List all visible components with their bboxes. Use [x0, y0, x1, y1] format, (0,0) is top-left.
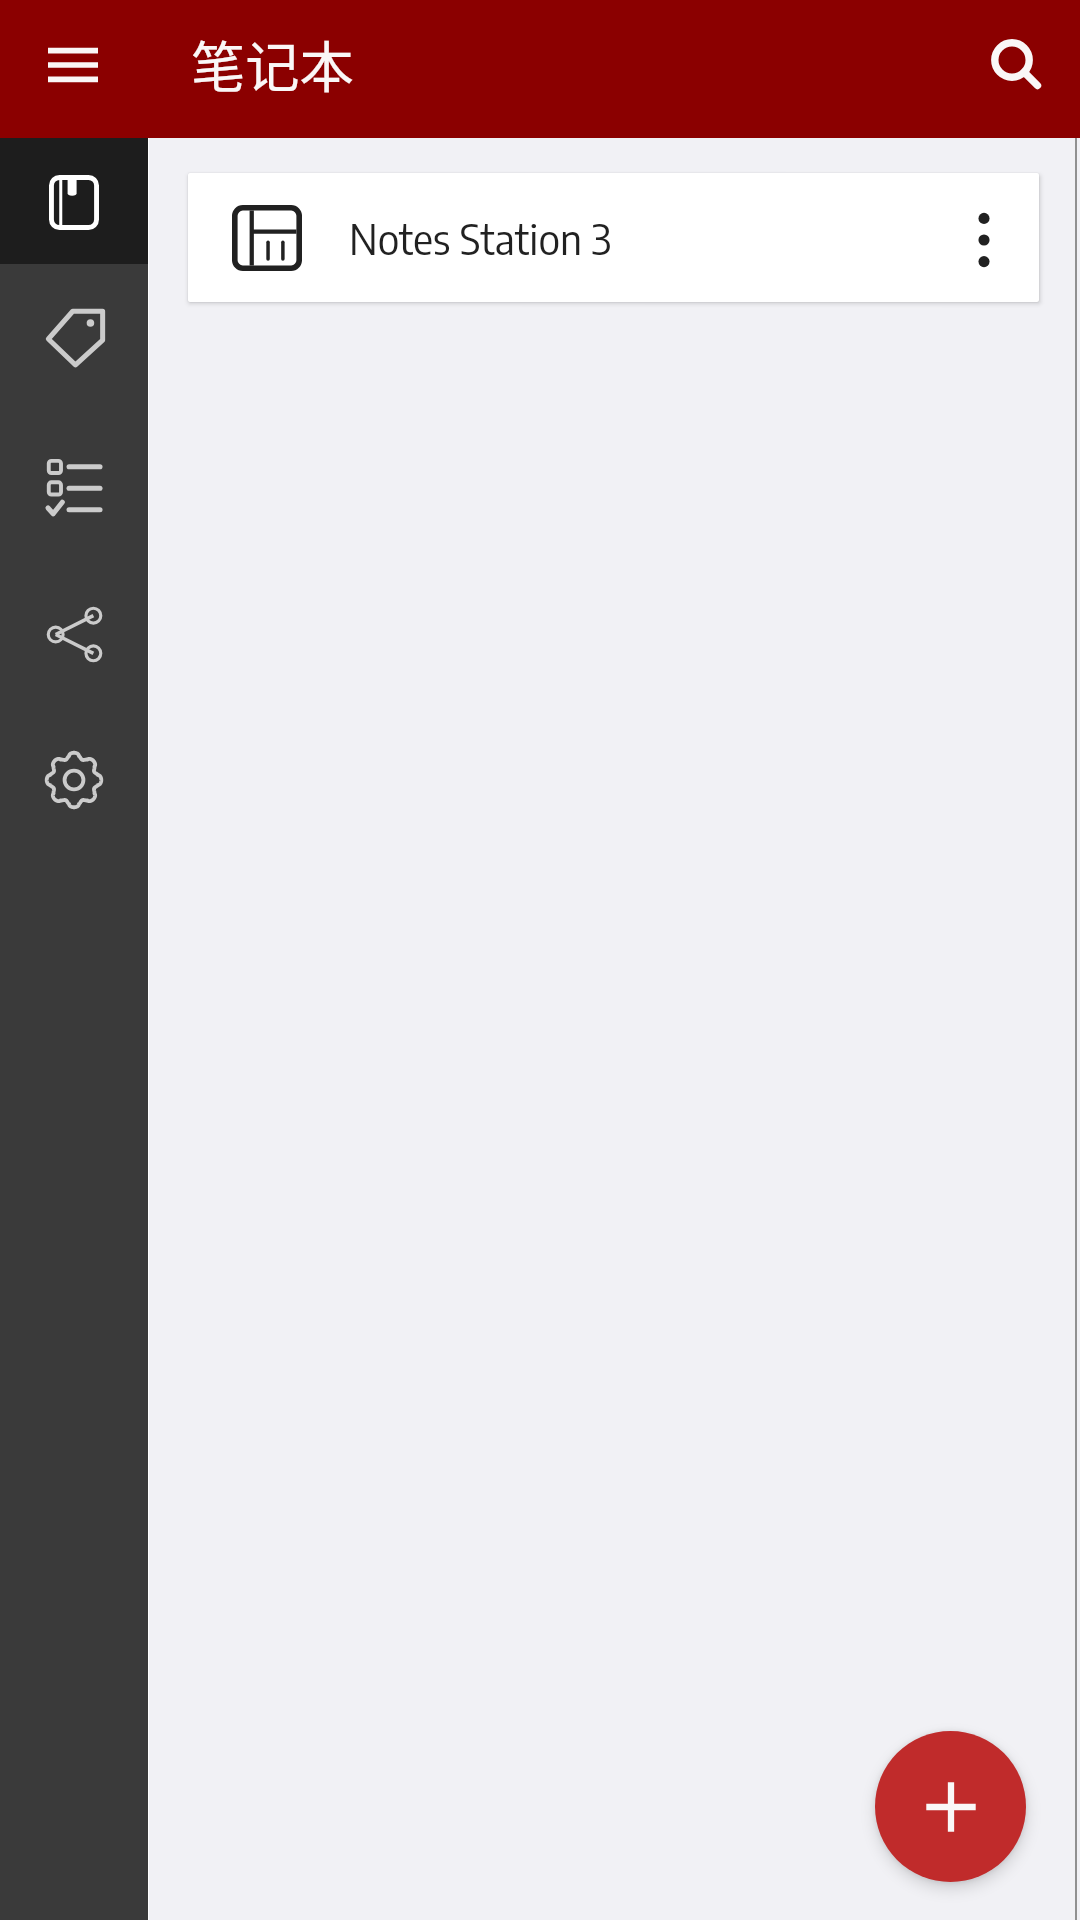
staticText: Notes Station 3 — [349, 212, 612, 264]
button[interactable]: Open navigation menu — [19, 11, 127, 119]
button[interactable]: Settings — [0, 705, 148, 852]
button[interactable]: More options — [948, 204, 1020, 276]
button[interactable]: Notes Station 3 — [188, 173, 1039, 302]
button[interactable]: Create note — [875, 1731, 1026, 1882]
button[interactable]: Notebooks — [0, 138, 148, 264]
button[interactable]: To-do list — [0, 411, 148, 558]
staticText: 笔记本 — [191, 24, 354, 103]
button[interactable]: Tags — [0, 264, 148, 411]
button[interactable]: Shared — [0, 558, 148, 705]
button[interactable]: Search — [960, 8, 1068, 116]
